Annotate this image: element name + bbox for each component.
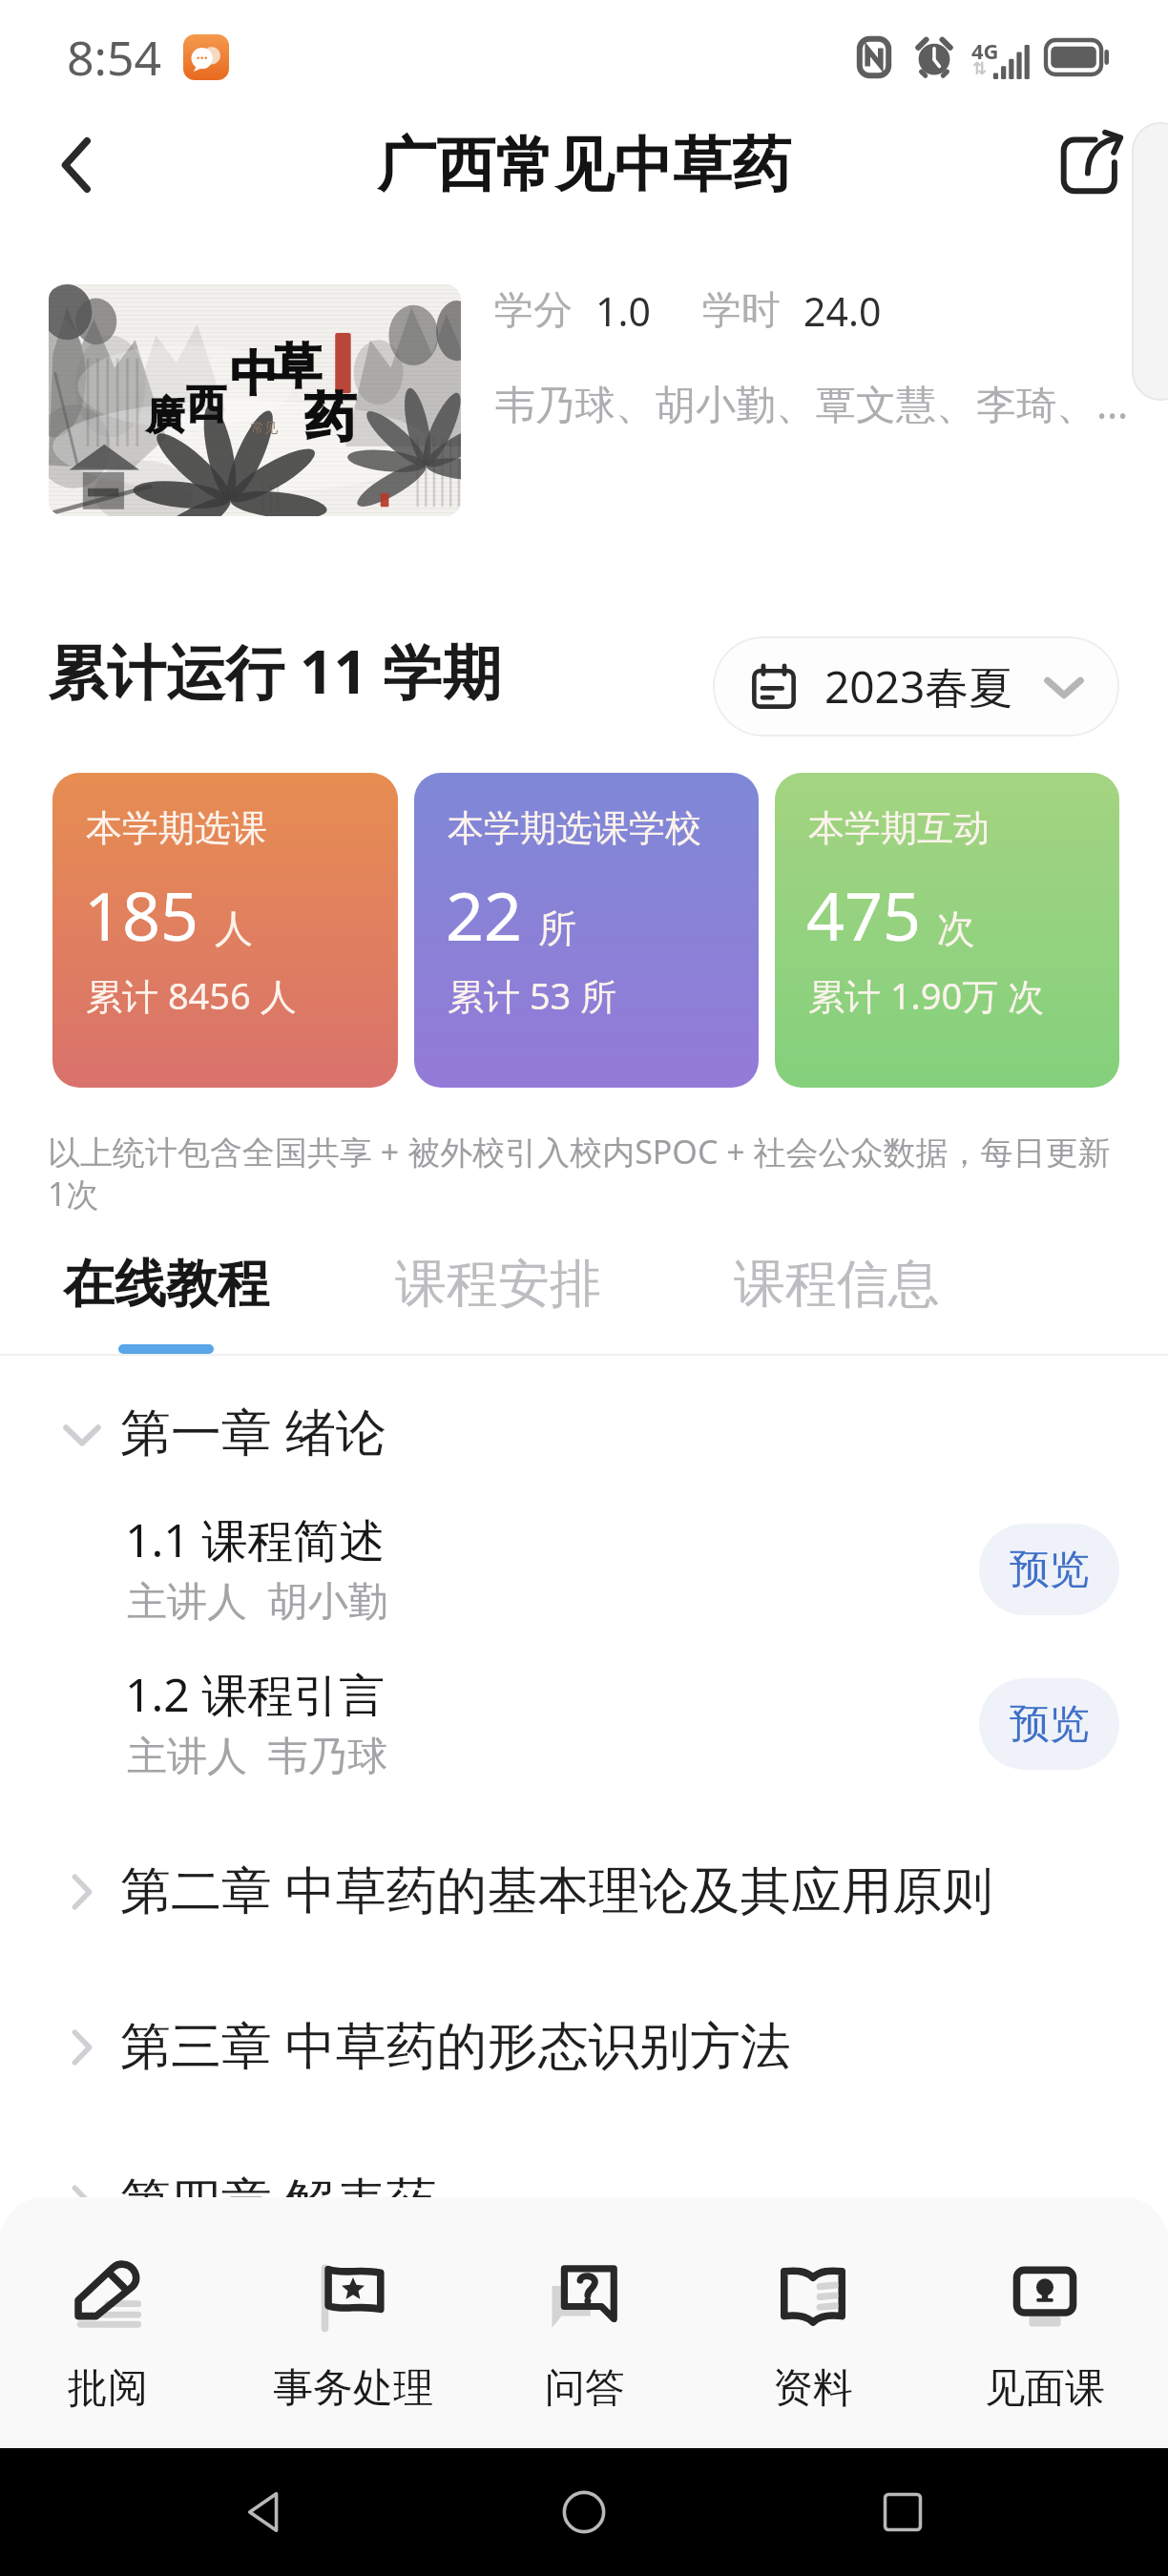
staticText: 累计运行 11 学期 xyxy=(48,631,502,712)
button[interactable]: Home xyxy=(532,2460,636,2565)
button[interactable]: 2023春夏 xyxy=(713,636,1119,737)
staticText: 常见 xyxy=(251,420,278,437)
button[interactable]: 本学期选课学校 xyxy=(414,773,759,1088)
button[interactable]: Back xyxy=(29,114,132,217)
staticText: 问答 xyxy=(545,2363,625,2414)
staticText: 累计 1.90万 次 xyxy=(808,970,1045,1020)
staticText: 本学期选课 xyxy=(86,805,267,851)
staticText: 次 xyxy=(937,904,975,952)
staticText: 韦乃球、胡小勤、覃文慧、李琦、… xyxy=(495,376,1129,430)
staticText: 主讲人 胡小勤 xyxy=(127,1572,388,1627)
staticText: 22 xyxy=(446,869,523,960)
button[interactable]: 本学期互动 xyxy=(775,773,1119,1088)
staticText: 1.0 xyxy=(595,284,651,338)
staticText: 预览 xyxy=(1010,1699,1090,1750)
staticText: 累计 8456 人 xyxy=(86,970,297,1020)
staticText: 学分 xyxy=(494,286,573,336)
staticText: 1.2 课程引言 xyxy=(125,1663,386,1726)
staticText: 学时 xyxy=(702,286,781,336)
staticText: 185 xyxy=(84,869,199,960)
staticText: 主讲人 韦乃球 xyxy=(127,1727,388,1781)
staticText: ⇅ xyxy=(972,58,988,78)
button[interactable]: 资料 xyxy=(708,2211,918,2430)
button[interactable]: Share xyxy=(1038,114,1141,217)
staticText: 广西常见中草药 xyxy=(377,128,791,202)
staticText: 第四章 解表药 xyxy=(120,2165,437,2232)
button[interactable]: 课程安排 xyxy=(395,1252,601,1354)
button[interactable]: 1.1 课程简述 xyxy=(0,1504,1168,1647)
staticText: 批阅 xyxy=(68,2363,148,2414)
button[interactable]: 问答 xyxy=(480,2211,690,2430)
staticText: 24.0 xyxy=(803,284,882,338)
button[interactable]: 在线教程 xyxy=(63,1252,269,1354)
button[interactable]: 预览 xyxy=(979,1524,1119,1615)
staticText: 本学期选课学校 xyxy=(448,805,701,851)
staticText: 475 xyxy=(806,869,922,960)
button[interactable]: 事务处理 xyxy=(248,2211,458,2430)
button[interactable]: 预览 xyxy=(979,1678,1119,1770)
staticText: 课程信息 xyxy=(734,1252,940,1317)
staticText: 药 xyxy=(304,385,356,450)
button[interactable]: 本学期选课 xyxy=(52,773,398,1088)
staticText: 中 xyxy=(230,344,278,405)
staticText: 人 xyxy=(215,904,253,952)
staticText: 第一章 绪论 xyxy=(120,1396,386,1463)
button[interactable]: 第四章 解表药 xyxy=(0,2165,1168,2232)
button[interactable]: Recents xyxy=(850,2460,955,2565)
staticText: 第三章 中草药的形态识别方法 xyxy=(120,2009,791,2076)
staticText: 第二章 中草药的基本理论及其应用原则 xyxy=(120,1854,993,1921)
staticText: 在线教程 xyxy=(63,1252,269,1317)
staticText: 资料 xyxy=(773,2363,853,2414)
button[interactable]: 批阅 xyxy=(3,2211,213,2430)
button[interactable]: 第一章 绪论 xyxy=(0,1396,1168,1463)
staticText: 课程安排 xyxy=(395,1252,601,1317)
staticText: 西 xyxy=(186,380,226,430)
staticText: 见面课 xyxy=(985,2363,1105,2414)
button[interactable]: Back xyxy=(214,2460,319,2565)
staticText: 以上统计包含全国共享 + 被外校引入校内SPOC + 社会公众数据，每日更新1次 xyxy=(48,1130,1128,1215)
staticText: 1.1 课程简述 xyxy=(125,1508,386,1571)
staticText: 累计 53 所 xyxy=(448,970,617,1020)
staticText: 本学期互动 xyxy=(808,805,990,851)
button[interactable]: 1.2 课程引言 xyxy=(0,1658,1168,1801)
button[interactable]: 第三章 中草药的形态识别方法 xyxy=(0,2009,1168,2076)
staticText: 事务处理 xyxy=(273,2363,433,2414)
staticText: 8:54 xyxy=(67,25,162,90)
staticText: 4G xyxy=(971,36,999,65)
button[interactable]: 第二章 中草药的基本理论及其应用原则 xyxy=(0,1854,1168,1921)
button[interactable]: 课程信息 xyxy=(734,1252,940,1354)
staticText: 预览 xyxy=(1010,1545,1090,1595)
staticText: 廣 xyxy=(146,391,184,439)
button[interactable]: 见面课 xyxy=(940,2211,1150,2430)
staticText: 草 xyxy=(274,337,322,397)
staticText: 2023春夏 xyxy=(824,656,1013,717)
staticText: 所 xyxy=(538,904,576,952)
